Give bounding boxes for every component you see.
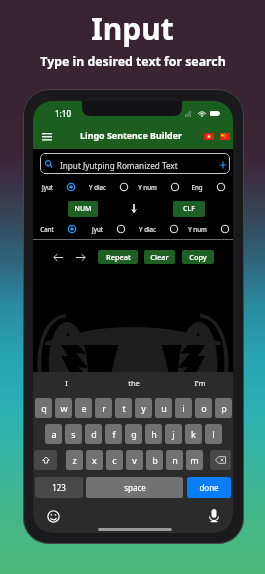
staticText: z (72, 454, 77, 466)
staticText: j (172, 428, 175, 440)
button[interactable]: j (165, 424, 182, 444)
staticText: n (172, 454, 178, 466)
staticText: Input (91, 8, 174, 49)
button[interactable]: u (155, 398, 172, 418)
button[interactable]: Repeat (98, 250, 138, 264)
button[interactable]: Voice input (206, 507, 222, 523)
button[interactable]: Next (75, 252, 86, 263)
staticText: 1:10 (55, 108, 71, 119)
staticText: Y num (188, 225, 207, 233)
staticText: Cant (40, 225, 54, 233)
other: Search (45, 160, 53, 168)
button[interactable]: y (135, 398, 152, 418)
staticText: h (151, 428, 157, 440)
button[interactable]: CLF (173, 201, 205, 217)
button[interactable]: n (166, 450, 183, 470)
staticText: k (191, 428, 196, 440)
button[interactable]: c (106, 450, 123, 470)
button[interactable]: 123 (35, 477, 83, 498)
staticText: Y num (138, 183, 157, 191)
button[interactable]: h (145, 424, 162, 444)
button[interactable]: a (45, 424, 62, 444)
staticText: Copy (189, 252, 207, 262)
button[interactable]: done (187, 477, 231, 498)
button[interactable]: Backspace (210, 450, 231, 470)
button[interactable]: k (185, 424, 202, 444)
button[interactable]: Copy (182, 250, 214, 264)
staticText: I'm (194, 378, 206, 388)
staticText: Jyut (42, 183, 53, 191)
staticText: m (190, 454, 199, 466)
staticText: NUM (74, 204, 92, 214)
staticText: y (141, 402, 146, 414)
button[interactable]: Cant (33, 221, 83, 237)
button[interactable]: Jyut (33, 179, 83, 195)
staticText: d (91, 428, 97, 440)
staticText: i (182, 402, 185, 414)
button[interactable]: Chinese (220, 133, 230, 140)
button[interactable]: Jyut (83, 221, 133, 237)
button[interactable]: Search (40, 153, 230, 174)
button[interactable]: q (35, 398, 52, 418)
staticText: Lingo Sentence Builder (80, 129, 182, 141)
staticText: Input Jyutping Romanized Text (60, 160, 178, 171)
button[interactable]: I'm (167, 372, 233, 393)
button[interactable]: Shift (34, 450, 57, 470)
staticText: 123 (52, 482, 66, 493)
staticText: Type in desired text for search (40, 53, 226, 70)
other: Add (219, 161, 227, 169)
staticText: x (92, 454, 97, 466)
staticText: v (132, 454, 137, 466)
other: Swap (130, 204, 138, 213)
button[interactable]: x (86, 450, 103, 470)
button[interactable]: the (100, 372, 167, 393)
button[interactable]: Open navigation menu (37, 127, 57, 147)
button[interactable]: f (105, 424, 122, 444)
staticText: f (112, 428, 116, 440)
button[interactable]: d (85, 424, 102, 444)
button[interactable]: Y num (133, 179, 183, 195)
button[interactable]: Emoji keyboard (45, 508, 61, 524)
button[interactable]: l (205, 424, 222, 444)
staticText: a (51, 428, 57, 440)
staticText: e (81, 402, 87, 414)
staticText: Clear (150, 252, 169, 262)
button[interactable]: I (33, 372, 100, 393)
staticText: space (124, 482, 146, 493)
button[interactable]: Eng (183, 179, 233, 195)
staticText: c (112, 454, 117, 466)
staticText: o (201, 402, 207, 414)
button[interactable]: i (175, 398, 192, 418)
button[interactable]: e (75, 398, 92, 418)
button[interactable]: v (126, 450, 143, 470)
button[interactable]: g (125, 424, 142, 444)
staticText: Eng (191, 183, 203, 191)
staticText: Y diac (89, 183, 106, 191)
staticText: l (212, 428, 215, 440)
button[interactable]: Y num (183, 221, 233, 237)
button[interactable]: space (86, 477, 183, 498)
staticText: CLF (183, 204, 195, 214)
staticText: Repeat (106, 252, 131, 262)
button[interactable]: b (146, 450, 163, 470)
button[interactable]: Y diac (133, 221, 183, 237)
button[interactable]: o (195, 398, 212, 418)
button[interactable]: w (55, 398, 72, 418)
staticText: s (71, 428, 76, 440)
button[interactable]: Vietnamese (204, 133, 214, 140)
staticText: w (60, 402, 68, 414)
staticText: the (128, 378, 140, 388)
button[interactable]: Clear (144, 250, 175, 264)
button[interactable]: m (186, 450, 203, 470)
button[interactable]: r (95, 398, 112, 418)
staticText: I (65, 378, 68, 388)
button[interactable]: p (215, 398, 232, 418)
staticText: t (122, 402, 126, 414)
button[interactable]: t (115, 398, 132, 418)
button[interactable]: Previous (53, 252, 64, 263)
button[interactable]: z (66, 450, 83, 470)
button[interactable]: Y diac (83, 179, 133, 195)
button[interactable]: NUM (68, 201, 98, 217)
staticText: Y diac (139, 225, 156, 233)
button[interactable]: s (65, 424, 82, 444)
